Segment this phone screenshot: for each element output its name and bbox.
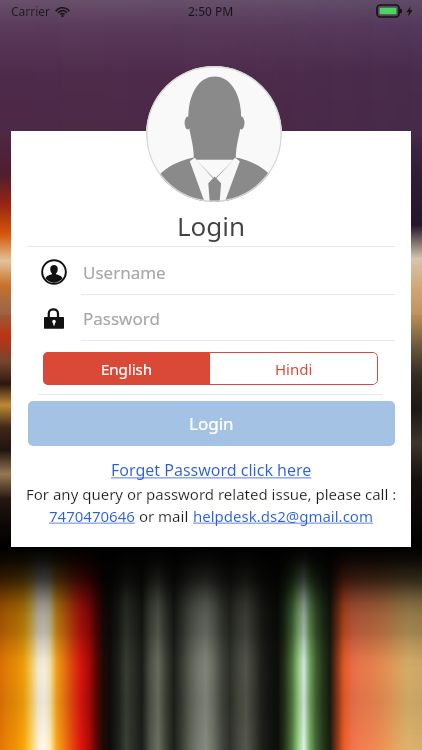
button[interactable]: Login [28,401,395,446]
button[interactable]: Username [26,250,395,294]
button[interactable]: helpdesk.ds2@gmail.com [193,506,373,526]
button[interactable]: English [43,352,210,385]
button[interactable]: Forget Password click here [111,459,312,481]
staticText: Login [0,208,422,243]
staticText: Username [83,261,166,284]
staticText: Login [189,412,234,435]
button[interactable]: Hindi [210,352,378,385]
staticText: Carrier [11,3,51,19]
staticText: For any query or password related issue,… [26,484,397,504]
button[interactable]: Password [26,296,395,340]
staticText: Hindi [275,359,313,379]
staticText: or mail [135,506,193,526]
button[interactable]: 7470470646 [49,506,135,526]
staticText: 2:50 PM [188,3,234,19]
staticText: English [101,359,153,379]
staticText: Password [83,307,160,330]
